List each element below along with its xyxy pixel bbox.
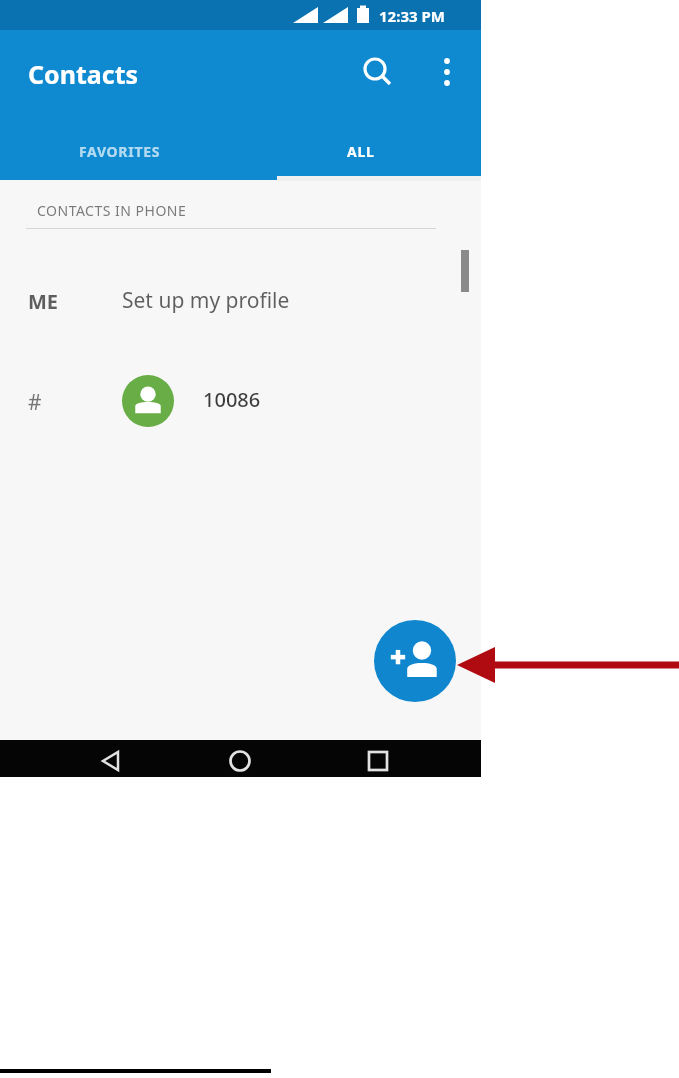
staticText: ALL <box>347 142 375 161</box>
staticText: FAVORITES <box>79 142 161 161</box>
staticText: ME <box>28 288 59 315</box>
staticText: 12:33 PM <box>379 6 445 26</box>
button[interactable]: Back <box>80 741 140 777</box>
button[interactable]: # <box>0 362 481 442</box>
staticText: # <box>28 388 42 417</box>
button[interactable]: ME <box>0 262 481 344</box>
staticText: CONTACTS IN PHONE <box>37 201 187 220</box>
button[interactable]: Add new contact <box>374 620 456 702</box>
button[interactable]: FAVORITES <box>0 122 240 180</box>
staticText: 10086 <box>203 386 261 413</box>
button[interactable]: Recent apps <box>348 741 408 777</box>
button[interactable]: ALL <box>240 122 481 180</box>
button[interactable]: Home <box>210 741 270 777</box>
staticText: Contacts <box>28 57 139 91</box>
button[interactable]: More options <box>426 48 470 96</box>
staticText: Set up my profile <box>122 286 290 315</box>
button[interactable]: Search <box>353 48 401 96</box>
